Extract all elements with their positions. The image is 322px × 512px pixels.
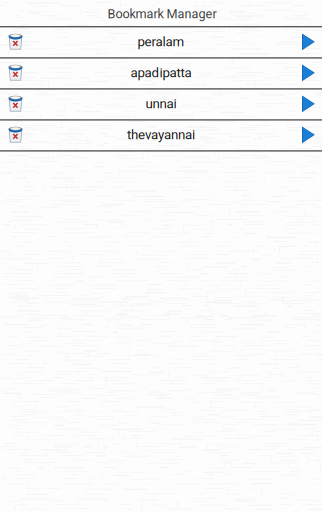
staticText: Bookmark Manager — [107, 7, 216, 21]
button[interactable]: Open thevayannai — [292, 120, 322, 150]
button[interactable]: Open apadipatta — [292, 58, 322, 88]
button[interactable]: Delete thevayannai — [0, 120, 30, 150]
button[interactable]: Delete apadipatta — [0, 58, 30, 88]
button[interactable]: peralam — [0, 27, 322, 58]
staticText: thevayannai — [127, 127, 195, 142]
button[interactable]: Open unnai — [292, 89, 322, 119]
staticText: peralam — [137, 34, 184, 49]
staticText: apadipatta — [130, 65, 191, 80]
button[interactable]: thevayannai — [0, 120, 322, 151]
button[interactable]: Delete unnai — [0, 89, 30, 119]
button[interactable]: Open peralam — [292, 27, 322, 57]
button[interactable]: Delete peralam — [0, 27, 30, 57]
staticText: unnai — [145, 96, 176, 111]
button[interactable]: apadipatta — [0, 58, 322, 89]
button[interactable]: unnai — [0, 89, 322, 120]
